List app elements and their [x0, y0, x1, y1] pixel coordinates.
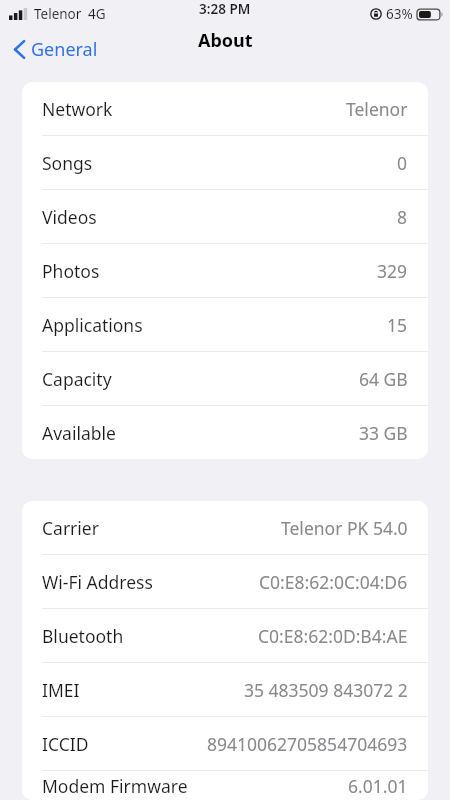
button[interactable]: Photos [22, 244, 428, 297]
staticText: C0:E8:62:0C:04:D6 [259, 570, 408, 594]
button[interactable]: Capacity [22, 352, 428, 405]
button[interactable]: Bluetooth [22, 609, 428, 662]
staticText: 8 [397, 205, 408, 229]
staticText: Videos [42, 205, 97, 229]
staticText: ICCID [42, 732, 89, 756]
staticText: Telenor [346, 97, 408, 121]
button[interactable]: IMEI [22, 663, 428, 716]
staticText: 64 GB [359, 367, 408, 391]
staticText: Bluetooth [42, 624, 124, 648]
button[interactable]: ICCID [22, 717, 428, 770]
staticText: Network [42, 97, 113, 121]
button[interactable]: Videos [22, 190, 428, 243]
button[interactable]: Carrier [22, 501, 428, 554]
staticText: 4G [88, 5, 106, 23]
staticText: Modem Firmware [42, 774, 188, 798]
staticText: 33 GB [359, 421, 408, 445]
staticText: 0 [397, 151, 408, 175]
staticText: Photos [42, 259, 100, 283]
staticText: Capacity [42, 367, 112, 391]
staticText: Applications [42, 313, 143, 337]
button[interactable]: Applications [22, 298, 428, 351]
staticText: Wi-Fi Address [42, 570, 153, 594]
staticText: 35 483509 843072 2 [244, 678, 408, 702]
staticText: About [198, 28, 253, 53]
staticText: 89410062705854704693 [207, 732, 408, 756]
staticText: Songs [42, 151, 93, 175]
staticText: C0:E8:62:0D:B4:AE [258, 624, 408, 648]
button[interactable]: Songs [22, 136, 428, 189]
staticText: Telenor [34, 5, 82, 23]
staticText: Telenor PK 54.0 [281, 516, 408, 540]
staticText: 15 [387, 313, 408, 337]
staticText: 6.01.01 [348, 774, 408, 798]
button[interactable]: General [0, 33, 108, 66]
staticText: Available [42, 421, 116, 445]
staticText: IMEI [42, 678, 80, 702]
staticText: 3:28 PM [199, 0, 251, 18]
button[interactable]: Wi-Fi Address [22, 555, 428, 608]
staticText: 63% [386, 5, 413, 23]
staticText: 329 [377, 259, 408, 283]
button[interactable]: Modem Firmware [22, 771, 428, 800]
button[interactable]: Available [22, 406, 428, 459]
button[interactable]: Network [22, 82, 428, 135]
staticText: General [31, 37, 98, 62]
staticText: Carrier [42, 516, 99, 540]
